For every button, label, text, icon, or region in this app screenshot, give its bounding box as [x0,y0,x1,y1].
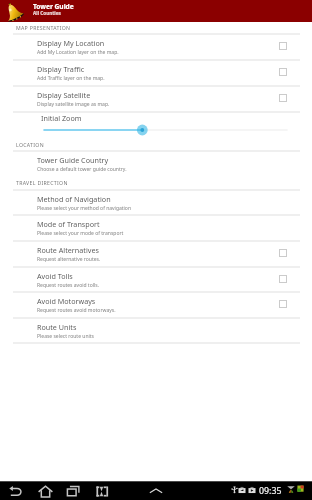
staticText: Initial Zoom [41,113,82,123]
button[interactable]: Route Units [0,317,312,342]
staticText: Tower Guide Country [37,155,109,165]
staticText: Mode of Transport [37,219,100,229]
button[interactable]: Tower Guide [2,1,26,23]
staticText: Add My Location layer on the map. [37,49,119,56]
staticText: Display My Location [37,38,105,48]
staticText: Avoid Motorways [37,296,96,306]
button[interactable]: MAP PRESENTATION [0,22,312,33]
staticText: Please select your mode of transport [37,230,124,237]
staticText: Please select your method of navigation [37,205,131,212]
button[interactable]: Recent apps [64,482,82,500]
button[interactable]: Method of Navigation [0,189,312,214]
staticText: Tower Guide [33,2,74,11]
staticText: Choose a default tower guide country. [37,166,127,173]
button[interactable]: Back [6,482,24,500]
button[interactable]: Display Satellite [0,85,312,111]
button[interactable]: Screenshot [92,482,110,500]
staticText: Avoid Tolls [37,271,73,281]
staticText: Display Satellite [37,90,91,100]
button[interactable]: Display My Location [0,33,312,59]
staticText: All Counties [33,10,61,16]
button[interactable]: Initial Zoom [0,111,312,137]
staticText: Request alternative routes. [37,256,101,263]
staticText: Route Units [37,322,77,332]
button[interactable]: Avoid Tolls [0,266,312,292]
button[interactable]: Mode of Transport [0,214,312,240]
staticText: Display Traffic [37,64,85,74]
staticText: MAP PRESENTATION [16,24,71,31]
button[interactable]: Display Traffic [0,59,312,85]
button[interactable]: TRAVEL DIRECTION [0,177,312,189]
staticText: LOCATION [16,141,44,148]
button[interactable]: LOCATION [0,136,312,150]
button[interactable]: Expand status bar [147,482,165,500]
staticText: Method of Navigation [37,194,111,204]
staticText: Request routes avoid motorways. [37,307,116,314]
staticText: Request routes avoid tolls. [37,282,99,289]
button[interactable]: Tower Guide Country [0,150,312,177]
button[interactable]: Home [36,482,54,500]
staticText: Display satellite image as map. [37,101,110,108]
button[interactable]: Route Alternatives [0,240,312,266]
staticText: Route Alternatives [37,245,99,255]
button[interactable]: Avoid Motorways [0,291,312,317]
staticText: 09:35 [259,485,282,497]
staticText: Add Traffic layer on the map. [37,75,105,82]
staticText: TRAVEL DIRECTION [16,179,68,186]
staticText: Please select route units [37,333,94,340]
